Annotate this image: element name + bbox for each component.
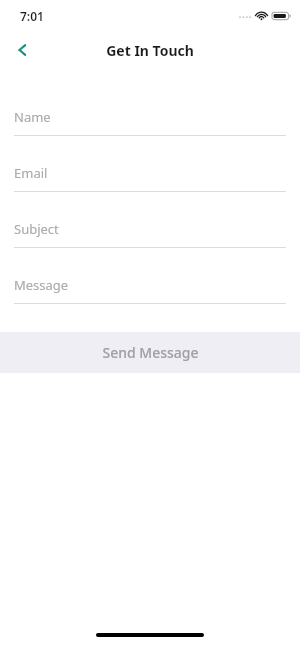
button[interactable]: Email: [14, 164, 286, 192]
button[interactable]: Message: [14, 276, 286, 304]
button[interactable]: Name: [14, 108, 286, 136]
button[interactable]: Subject: [14, 220, 286, 248]
staticText: 7:01: [20, 8, 44, 24]
button[interactable]: Back: [4, 32, 40, 68]
staticText: Email: [14, 164, 48, 182]
staticText: Subject: [14, 220, 59, 238]
staticText: Name: [14, 108, 51, 126]
staticText: Get In Touch: [106, 41, 194, 60]
staticText: Send Message: [102, 343, 199, 362]
staticText: Message: [14, 276, 69, 294]
button[interactable]: Send Message: [0, 332, 300, 373]
